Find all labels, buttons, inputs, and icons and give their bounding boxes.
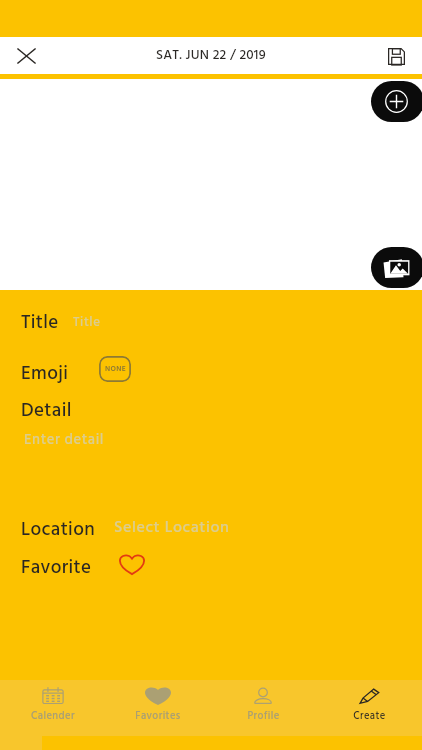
button[interactable]: Favorites — [105, 680, 210, 750]
button[interactable]: Favorite — [118, 551, 146, 577]
staticText: Emoji — [21, 359, 69, 389]
button[interactable]: Calender — [0, 680, 105, 750]
staticText: SAT. JUN 22 / 2019 — [156, 45, 266, 67]
staticText: Profile — [247, 708, 280, 725]
staticText: Create — [353, 708, 386, 725]
button[interactable]: Create — [316, 680, 422, 750]
button[interactable]: NONE — [99, 356, 131, 382]
staticText: Detail — [21, 396, 72, 426]
staticText: Title — [21, 308, 59, 338]
staticText: Enter detail — [24, 429, 104, 452]
button[interactable]: Add photo — [371, 247, 422, 288]
button[interactable]: Add — [371, 81, 422, 122]
button[interactable]: Profile — [210, 680, 316, 750]
staticText: Calender — [31, 708, 75, 725]
button[interactable]: Save — [380, 40, 412, 72]
staticText: Favorite — [21, 553, 92, 583]
staticText: NONE — [105, 363, 126, 375]
staticText: Select Location — [114, 515, 230, 541]
staticText: Title — [73, 312, 101, 333]
button[interactable]: Close — [10, 39, 43, 72]
staticText: Favorites — [135, 708, 181, 725]
staticText: Location — [21, 515, 96, 545]
